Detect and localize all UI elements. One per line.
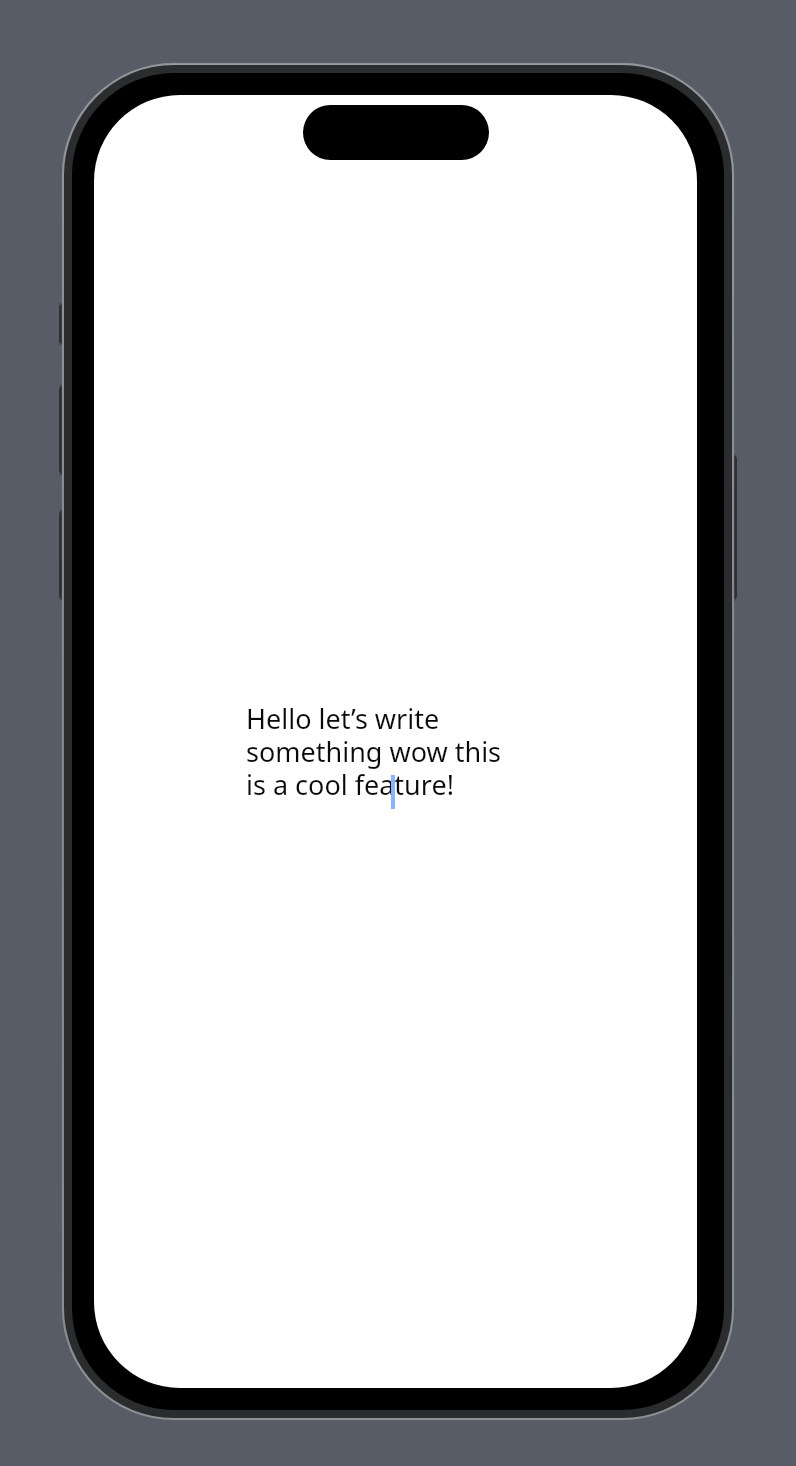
other: Dynamic Island bbox=[303, 105, 489, 160]
button[interactable]: Hello let’s write something wow this is … bbox=[246, 703, 526, 802]
